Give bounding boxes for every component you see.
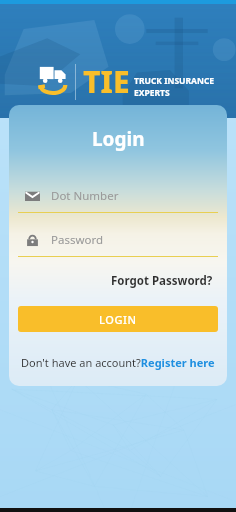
staticText: EXPERTS	[134, 87, 170, 99]
button[interactable]: LOGIN	[18, 306, 218, 332]
staticText: Forgot Password?	[111, 273, 213, 289]
staticText: TRUCK INSURANCE	[134, 75, 215, 87]
button[interactable]: Password	[18, 227, 218, 253]
button[interactable]: Dot Number	[18, 183, 218, 209]
staticText: LOGIN	[99, 312, 137, 327]
staticText: Dot Number	[51, 188, 119, 204]
button[interactable]: Forgot Password?	[107, 270, 217, 292]
button[interactable]: Don't have an account?Register here	[17, 353, 219, 372]
staticText: Don't have an account?Register here	[21, 355, 215, 370]
staticText: TIE	[83, 61, 130, 102]
staticText: Login	[92, 126, 145, 152]
staticText: Password	[51, 232, 104, 248]
